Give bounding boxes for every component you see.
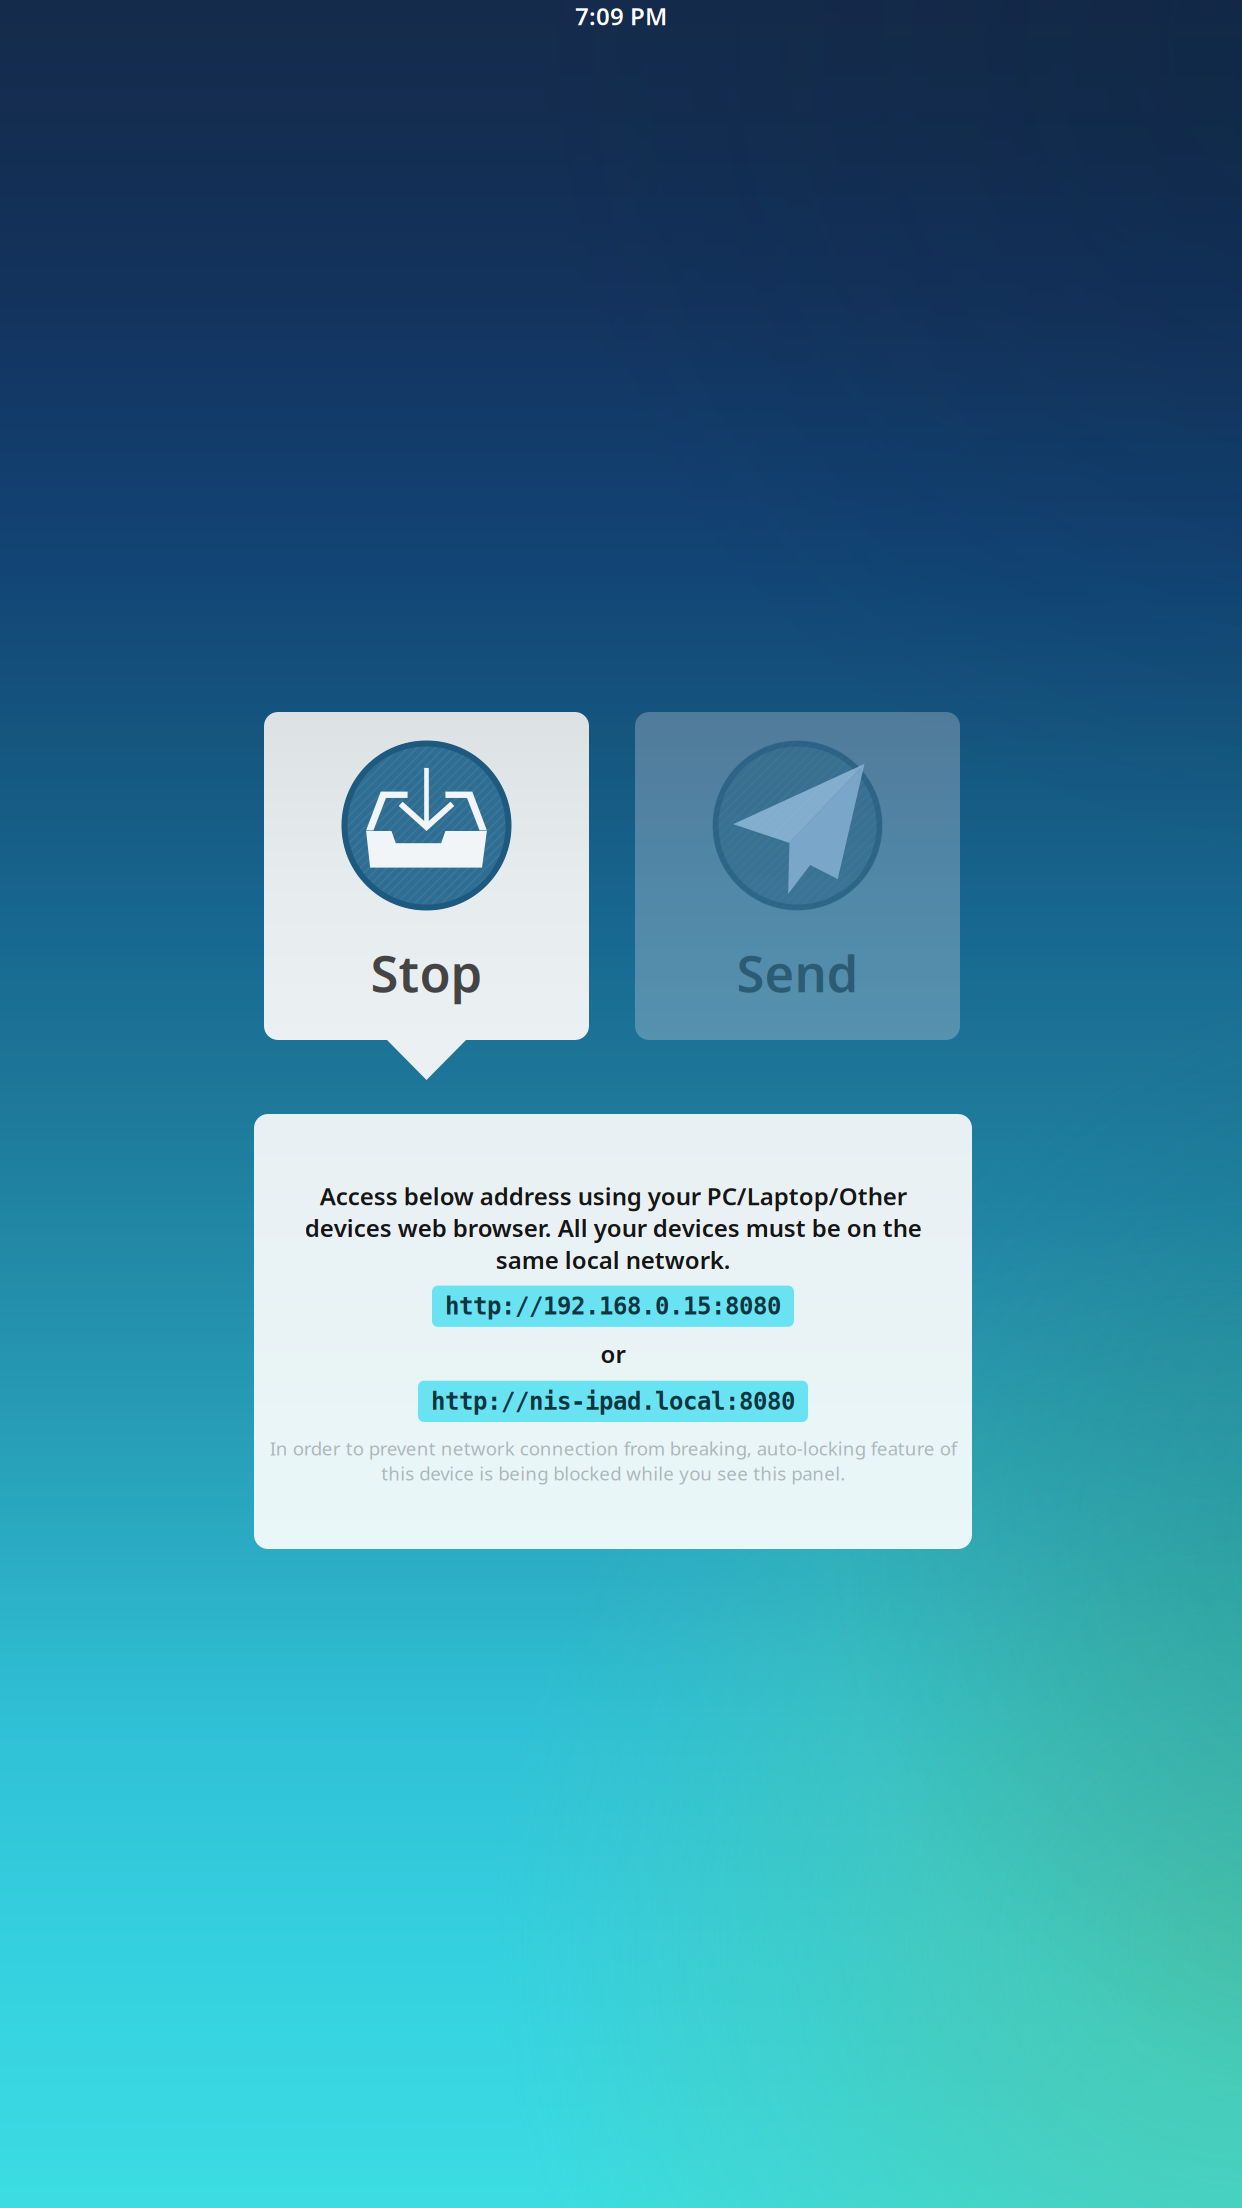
- button[interactable]: http://192.168.0.15:8080: [432, 1286, 794, 1327]
- button[interactable]: Send: [635, 712, 960, 1040]
- staticText: http://192.168.0.15:8080: [445, 1293, 781, 1320]
- button[interactable]: http://nis-ipad.local:8080: [418, 1381, 808, 1422]
- staticText: In order to prevent network connection f…: [269, 1436, 956, 1486]
- staticText: http://nis-ipad.local:8080: [431, 1388, 795, 1415]
- staticText: or: [600, 1338, 625, 1370]
- staticText: Send: [736, 939, 858, 1006]
- staticText: 7:09 PM: [575, 0, 667, 32]
- staticText: Stop: [370, 939, 482, 1006]
- button[interactable]: Stop: [264, 712, 589, 1040]
- staticText: Access below address using your PC/Lapto…: [304, 1180, 921, 1276]
